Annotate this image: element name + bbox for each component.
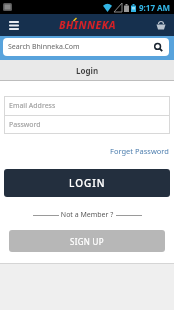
button[interactable]: Forget Password	[110, 146, 169, 156]
staticText: BHINNEKA	[59, 18, 116, 32]
staticText: SIGN UP	[70, 236, 104, 247]
staticText: LOGIN	[69, 176, 106, 190]
staticText: Password	[9, 120, 41, 130]
staticText: Search Bhinneka.Com	[8, 42, 80, 52]
button[interactable]	[7, 19, 20, 32]
button[interactable]: SIGN UP	[9, 230, 165, 252]
button[interactable]: Search Bhinneka.Com	[3, 38, 169, 56]
staticText: 9:17 AM	[139, 2, 171, 13]
staticText: Login	[76, 65, 99, 76]
button[interactable]: Email Address	[4, 96, 170, 115]
staticText: Not a Member ?	[59, 210, 116, 220]
staticText: Email Address	[9, 101, 56, 111]
button[interactable]	[155, 19, 167, 31]
button[interactable]: LOGIN	[4, 169, 170, 197]
button[interactable]: Password	[4, 116, 170, 134]
